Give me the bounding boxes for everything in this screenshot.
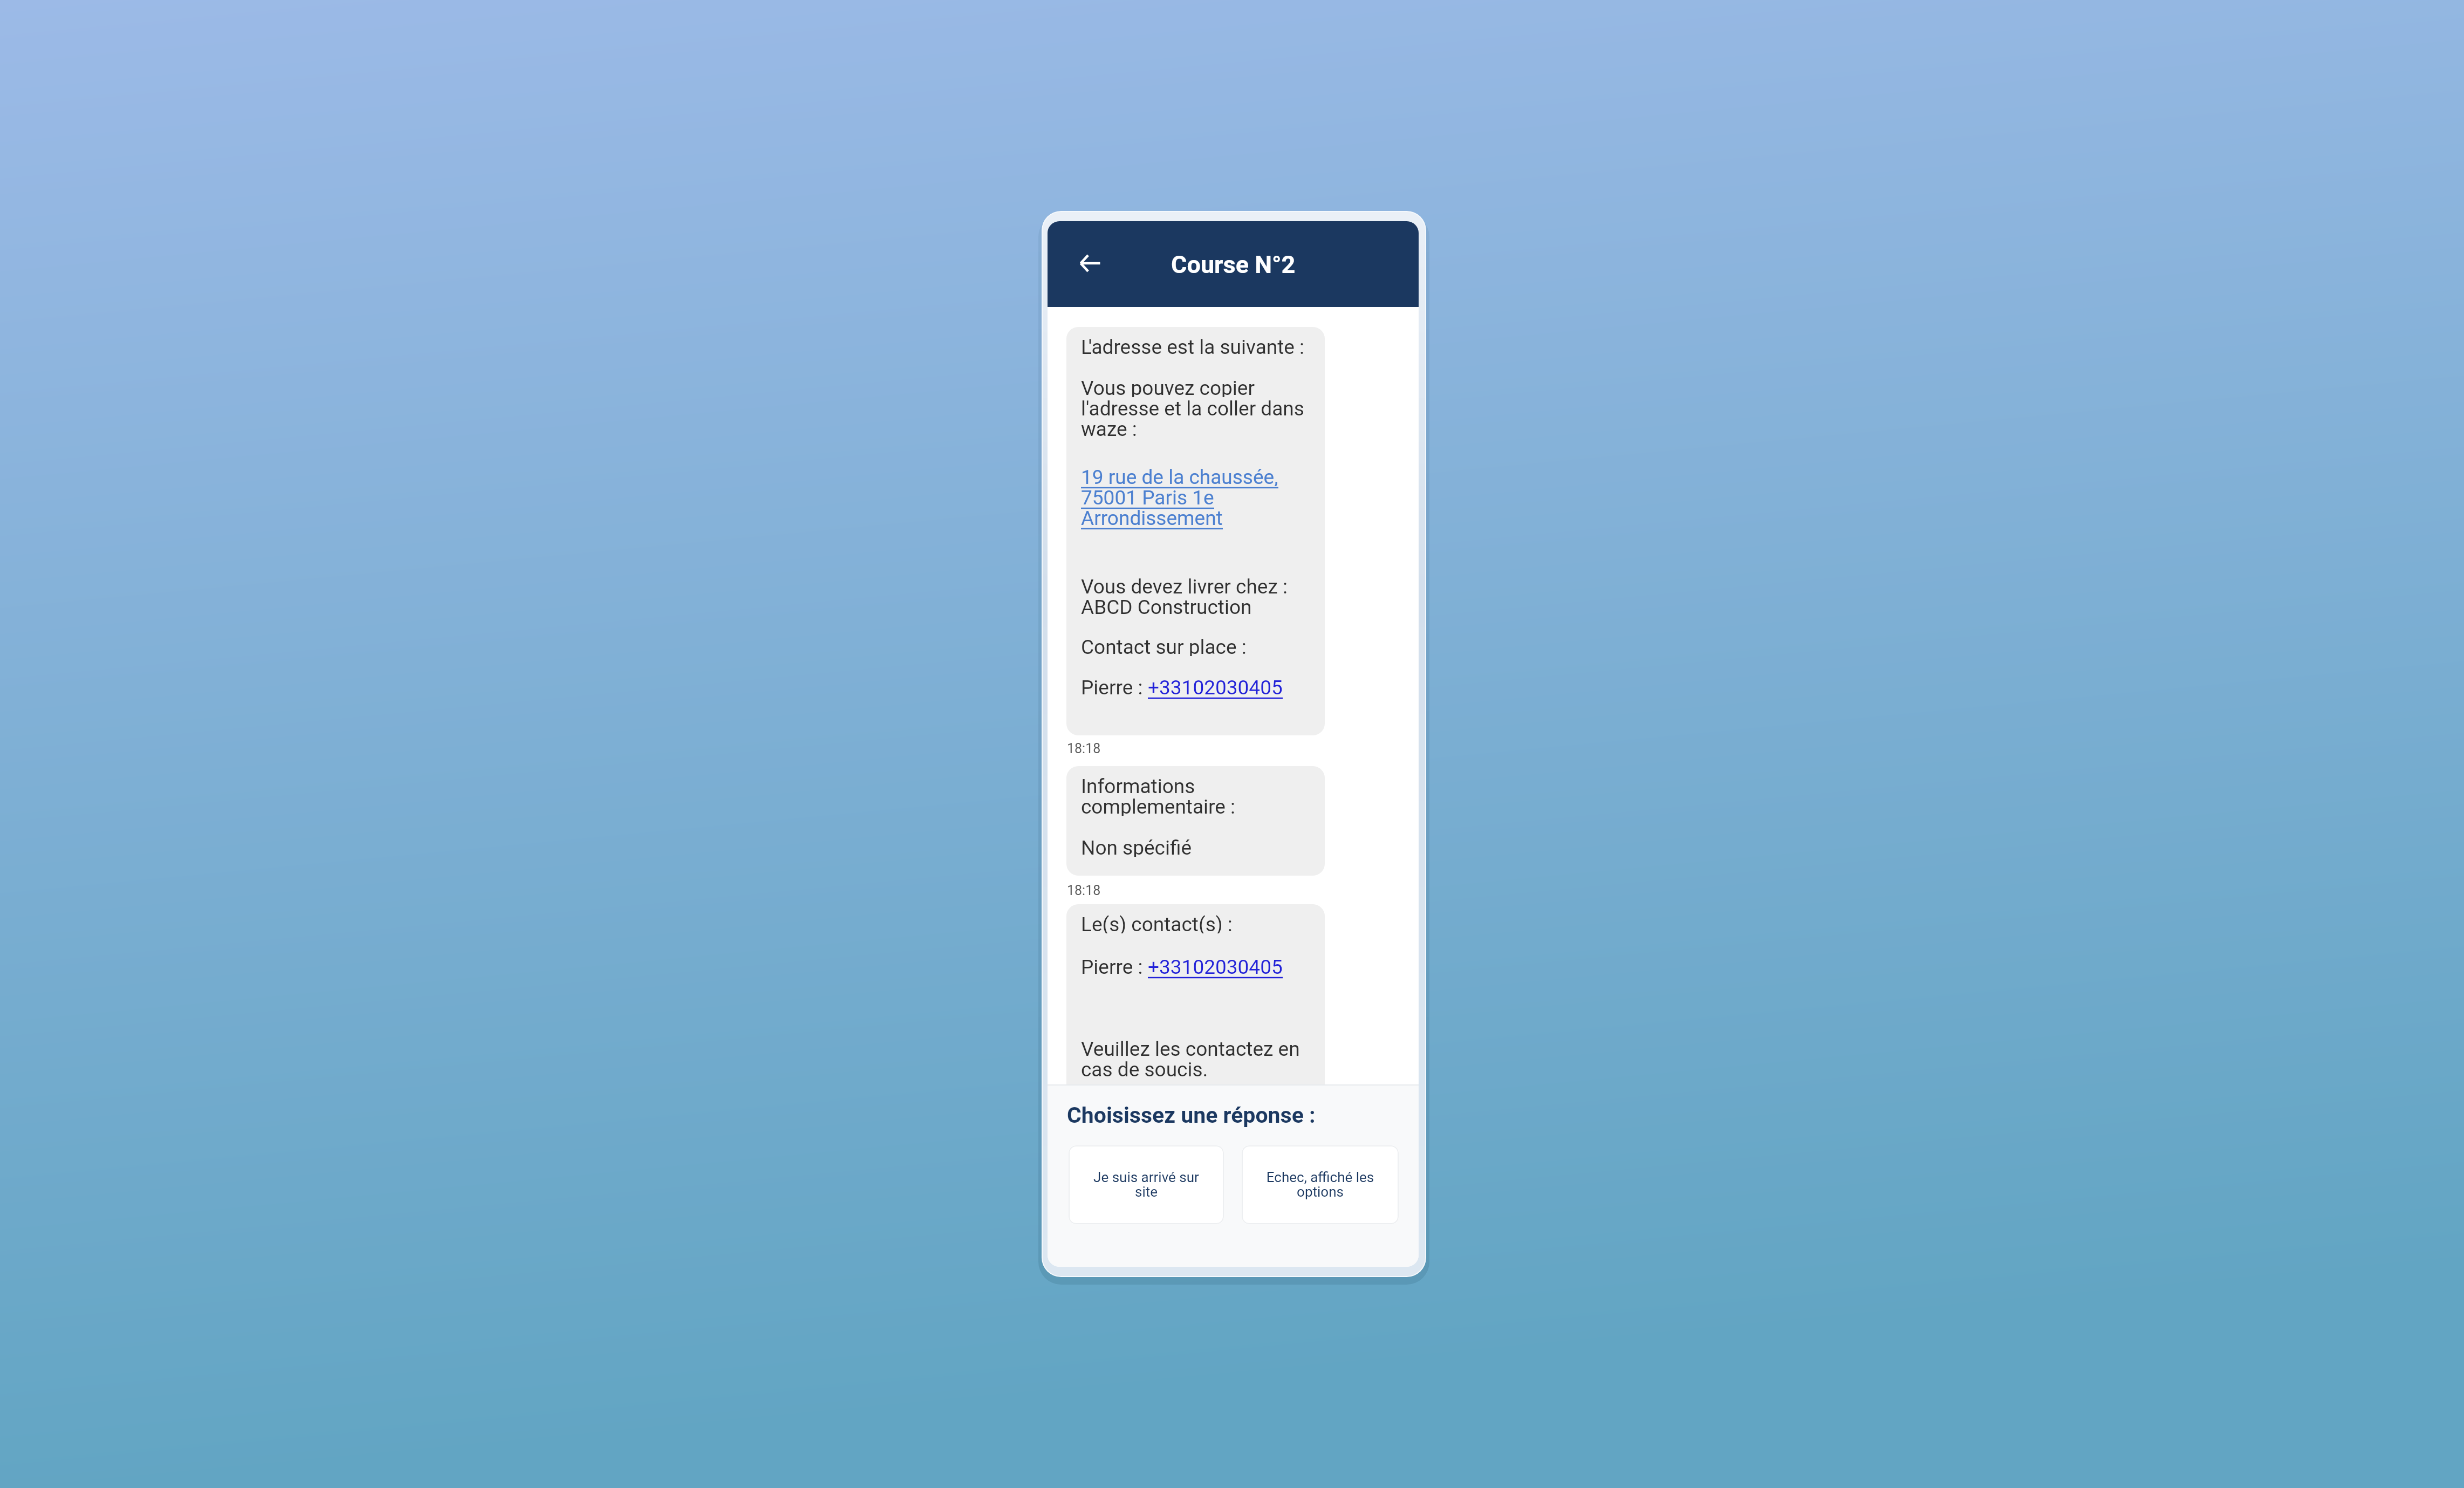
- staticText: l'adresse et la coller dans: [1081, 397, 1304, 418]
- staticText: Contact sur place :: [1081, 636, 1247, 656]
- button[interactable]: 19 rue de la chaussée,: [1081, 469, 1278, 489]
- staticText: 19 rue de la chaussée,: [1081, 466, 1278, 486]
- staticText: cas de soucis.: [1081, 1058, 1208, 1079]
- staticText: ABCD Construction: [1081, 596, 1252, 616]
- button[interactable]: Echec, affiché les options: [1242, 1145, 1399, 1224]
- staticText: Course N°2: [1171, 250, 1296, 279]
- button[interactable]: 75001 Paris 1e: [1081, 489, 1214, 510]
- staticText: +33102030405: [1148, 955, 1283, 976]
- button[interactable]: Pierre :: [1081, 959, 1283, 979]
- staticText: 18:18: [1067, 741, 1101, 756]
- staticText: Non spécifié: [1081, 836, 1192, 857]
- staticText: Veuillez les contactez en: [1081, 1037, 1300, 1058]
- button[interactable]: Je suis arrivé sur site: [1069, 1145, 1224, 1224]
- staticText: Le(s) contact(s) :: [1081, 913, 1233, 933]
- staticText: complementaire :: [1081, 795, 1235, 816]
- staticText: Pierre :: [1081, 676, 1148, 697]
- button[interactable]: Arrondissement: [1081, 510, 1223, 530]
- staticText: Pierre :: [1081, 955, 1148, 976]
- staticText: L'adresse est la suivante :: [1081, 336, 1305, 356]
- staticText: 18:18: [1067, 883, 1101, 898]
- staticText: Echec, affiché les options: [1258, 1169, 1382, 1200]
- staticText: Vous pouvez copier: [1081, 377, 1255, 397]
- staticText: Informations: [1081, 775, 1195, 795]
- staticText: Choisissez une réponse :: [1067, 1102, 1316, 1128]
- button[interactable]: Back: [1072, 245, 1108, 281]
- staticText: 75001 Paris 1e: [1081, 486, 1214, 507]
- staticText: +33102030405: [1148, 676, 1283, 697]
- button[interactable]: Pierre :: [1081, 679, 1283, 700]
- staticText: Je suis arrivé sur site: [1085, 1169, 1208, 1200]
- staticText: Arrondissement: [1081, 507, 1223, 527]
- staticText: Vous devez livrer chez :: [1081, 575, 1288, 596]
- staticText: waze :: [1081, 418, 1137, 438]
